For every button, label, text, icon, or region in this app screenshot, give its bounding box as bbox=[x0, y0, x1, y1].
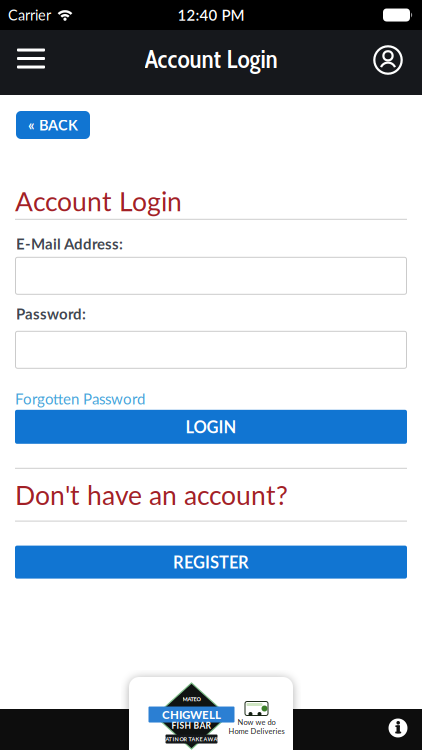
staticText: Carrier bbox=[8, 6, 51, 24]
staticText: Forgotten Password bbox=[15, 390, 145, 408]
staticText: REGISTER bbox=[173, 552, 249, 572]
staticText: Account Login bbox=[144, 43, 277, 74]
button[interactable] bbox=[386, 716, 410, 740]
staticText: Home Deliveries bbox=[228, 726, 284, 735]
staticText: 12:40 PM bbox=[177, 6, 244, 24]
staticText: « BACK bbox=[28, 116, 78, 134]
button[interactable]: « BACK bbox=[16, 111, 90, 139]
button[interactable]: LOGIN bbox=[15, 410, 407, 444]
staticText: EAT IN OR TAKE AWAY bbox=[162, 736, 220, 742]
staticText: Don't have an account? bbox=[15, 479, 288, 511]
staticText: E-Mail Address: bbox=[16, 235, 123, 253]
staticText: CHIGWELL bbox=[162, 708, 221, 721]
staticText: Password: bbox=[16, 305, 86, 323]
staticText: MATEO bbox=[182, 696, 200, 702]
button[interactable]: Forgotten Password bbox=[15, 390, 145, 408]
staticText: FISH BAR bbox=[171, 720, 211, 731]
staticText: Now we do bbox=[237, 717, 275, 726]
button[interactable] bbox=[0, 48, 45, 68]
staticText: LOGIN bbox=[185, 417, 236, 437]
button[interactable] bbox=[373, 43, 422, 73]
button[interactable]: REGISTER bbox=[15, 546, 407, 579]
staticText: Account Login bbox=[15, 185, 182, 217]
